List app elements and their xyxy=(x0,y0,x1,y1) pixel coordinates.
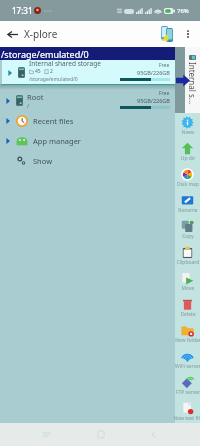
staticText: 76% xyxy=(177,7,189,15)
staticText: Internal s... xyxy=(187,62,198,105)
staticText: Free xyxy=(159,62,170,69)
staticText: WiFi server xyxy=(173,363,200,370)
staticText: FTP server xyxy=(173,389,200,396)
staticText: New folder xyxy=(173,337,200,344)
staticText: /storage/emulated/0 xyxy=(29,76,78,83)
staticText: /storage/emulated/0 xyxy=(1,48,89,60)
staticText: Copy xyxy=(173,233,200,240)
button[interactable]: Recents xyxy=(36,424,57,445)
staticText: Disk map xyxy=(173,181,200,188)
button[interactable]: New folder xyxy=(175,321,200,347)
button[interactable]: WiFi server xyxy=(175,347,200,373)
staticText: Recent files xyxy=(33,116,74,126)
staticText: Up dir xyxy=(173,155,200,162)
button[interactable]: App manager xyxy=(0,131,175,151)
staticText: App manager xyxy=(33,136,81,146)
button[interactable]: Root xyxy=(0,90,175,111)
button[interactable]: Back xyxy=(0,22,24,46)
staticText: New text file xyxy=(173,415,200,422)
staticText: Clipboard xyxy=(173,259,200,266)
staticText: Move xyxy=(173,285,200,292)
button[interactable]: New text file xyxy=(175,399,200,425)
button[interactable]: Recent files xyxy=(0,111,175,131)
button[interactable]: FTP server xyxy=(175,373,200,399)
staticText: Delete xyxy=(173,311,200,318)
button[interactable]: Copy xyxy=(175,217,200,243)
button[interactable]: Delete xyxy=(175,295,200,321)
button[interactable]: Switch device xyxy=(157,24,177,44)
button[interactable]: Rename xyxy=(175,191,200,217)
button[interactable]: Internal s... xyxy=(185,47,200,113)
button[interactable]: Clipboard xyxy=(175,243,200,269)
staticText: 45 xyxy=(35,68,41,75)
staticText: / xyxy=(27,102,30,110)
staticText: 2 xyxy=(50,68,53,75)
staticText: Internal shared storage xyxy=(29,59,101,68)
staticText: X-plore xyxy=(24,27,58,41)
staticText: 95GB/226GB xyxy=(137,97,170,104)
staticText: Show xyxy=(33,156,53,166)
button[interactable]: Move xyxy=(175,269,200,295)
button[interactable]: Home xyxy=(90,424,111,445)
button[interactable]: Disk map xyxy=(175,165,200,191)
staticText: News xyxy=(173,129,200,136)
staticText: Root xyxy=(27,92,44,102)
button[interactable]: Show xyxy=(0,151,175,171)
staticText: 95GB/226GB xyxy=(137,69,170,76)
staticText: Free xyxy=(159,90,170,97)
button[interactable]: More options xyxy=(177,23,199,45)
staticText: 17:31 xyxy=(12,5,33,16)
staticText: Rename xyxy=(173,207,200,214)
button[interactable]: News xyxy=(175,113,200,139)
button[interactable]: Internal shared storage xyxy=(2,60,175,85)
button[interactable]: Up dir xyxy=(175,139,200,165)
